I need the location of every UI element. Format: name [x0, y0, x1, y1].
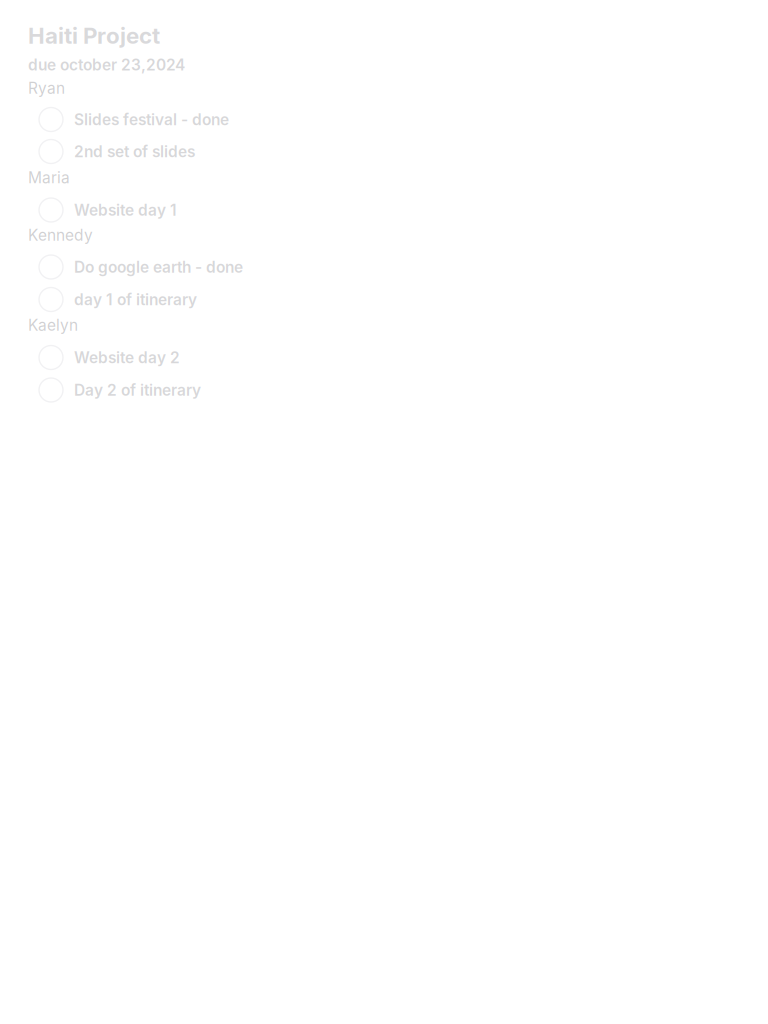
button[interactable]: 2nd set of slides	[39, 136, 195, 166]
staticText: day 1 of itinerary	[74, 290, 197, 309]
staticText: Kennedy	[28, 226, 93, 244]
button[interactable]: Slides festival - done	[39, 104, 229, 134]
button[interactable]: Website day 1	[39, 195, 177, 225]
staticText: Ryan	[28, 79, 65, 97]
staticText: Slides festival - done	[74, 110, 229, 129]
button[interactable]: day 1 of itinerary	[39, 284, 197, 314]
staticText: Website day 2	[74, 348, 180, 367]
button[interactable]: Day 2 of itinerary	[39, 375, 201, 405]
button[interactable]: Do google earth - done	[39, 252, 243, 282]
button[interactable]: Website day 2	[39, 342, 180, 372]
staticText: Day 2 of itinerary	[74, 381, 201, 399]
staticText: Do google earth - done	[74, 258, 243, 276]
staticText: Website day 1	[74, 201, 177, 219]
staticText: Maria	[28, 168, 70, 187]
staticText: due october 23,2024	[28, 55, 185, 74]
staticText: 2nd set of slides	[74, 142, 195, 161]
staticText: Kaelyn	[28, 316, 78, 334]
staticText: Haiti Project	[28, 22, 160, 49]
